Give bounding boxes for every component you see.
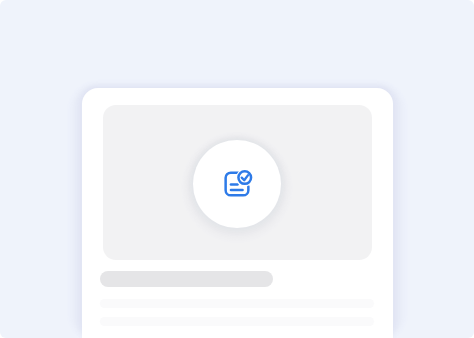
button[interactable]: Create note [193, 140, 281, 228]
